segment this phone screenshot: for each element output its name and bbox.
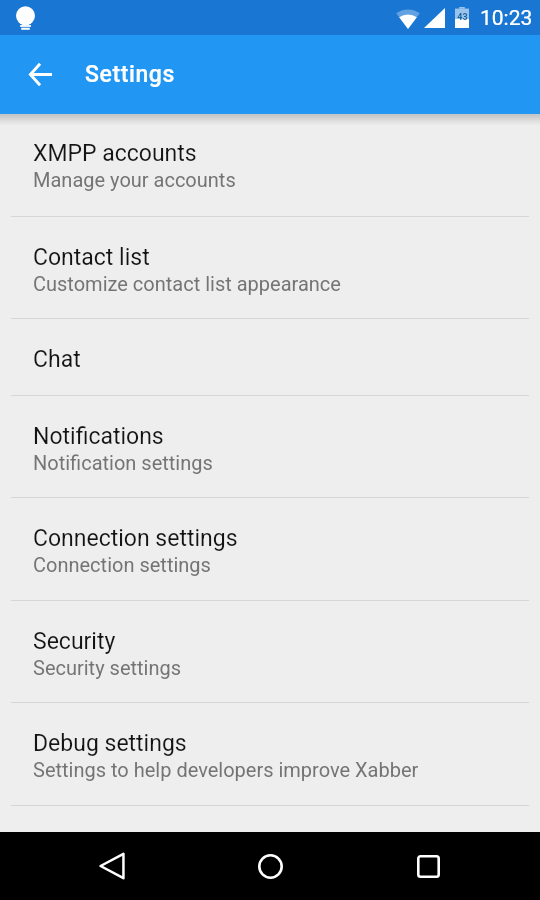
staticText: 10:23 — [480, 6, 533, 31]
staticText: Security settings — [33, 656, 182, 679]
staticText: Manage your accounts — [33, 168, 236, 191]
button[interactable]: XMPP accounts — [0, 113, 540, 217]
button[interactable]: Debug settings — [0, 703, 540, 806]
staticText: XMPP accounts — [33, 140, 197, 167]
staticText: Chat — [33, 346, 81, 373]
button[interactable]: Connection settings — [0, 498, 540, 601]
staticText: Connection settings — [33, 553, 211, 576]
button[interactable]: Chat — [0, 319, 540, 396]
button[interactable]: Security — [0, 601, 540, 703]
staticText: 43 — [457, 12, 468, 23]
button[interactable]: Contact list — [0, 217, 540, 319]
staticText: Connection settings — [33, 525, 238, 552]
staticText: Contact list — [33, 244, 150, 271]
staticText: Notification settings — [33, 451, 213, 474]
staticText: Notifications — [33, 423, 164, 450]
staticText: Settings — [85, 61, 175, 88]
staticText: Customize contact list appearance — [33, 272, 341, 295]
button[interactable]: Home — [236, 832, 304, 900]
button[interactable]: Notifications — [0, 396, 540, 498]
staticText: Debug settings — [33, 730, 187, 757]
staticText: Settings to help developers improve Xabb… — [33, 758, 419, 781]
button[interactable]: Recent apps — [394, 832, 462, 900]
button[interactable]: Back — [16, 50, 64, 98]
button[interactable]: Back — [78, 832, 146, 900]
staticText: Security — [33, 628, 116, 655]
